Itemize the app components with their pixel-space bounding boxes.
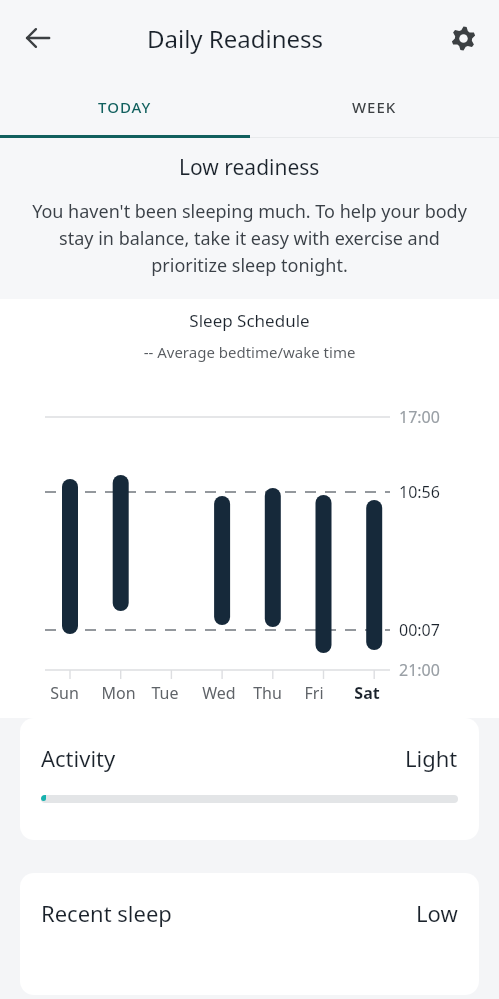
staticText: Daily Readiness: [147, 22, 324, 55]
staticText: 10:56: [399, 481, 440, 503]
staticText: Thu: [253, 682, 282, 704]
staticText: Low: [416, 898, 458, 928]
staticText: Fri: [304, 682, 324, 704]
staticText: Mon: [101, 682, 136, 704]
button[interactable]: Settings: [439, 14, 487, 62]
staticText: Light: [405, 743, 458, 773]
staticText: You haven't been sleeping much. To help …: [23, 199, 476, 277]
staticText: Tue: [151, 682, 179, 704]
button[interactable]: Recent sleep: [20, 873, 479, 995]
staticText: Wed: [202, 682, 236, 704]
button[interactable]: WEEK: [249, 76, 499, 138]
staticText: Sun: [50, 682, 79, 704]
staticText: 21:00: [399, 659, 440, 681]
staticText: TODAY: [98, 97, 152, 117]
staticText: 17:00: [399, 406, 440, 428]
staticText: 00:07: [399, 619, 440, 641]
staticText: Sleep Schedule: [0, 309, 499, 332]
staticText: Low readiness: [179, 153, 320, 182]
staticText: WEEK: [352, 97, 397, 117]
button[interactable]: Activity: [20, 718, 479, 840]
staticText: Recent sleep: [41, 898, 172, 928]
button[interactable]: Back: [14, 14, 62, 62]
staticText: Activity: [41, 743, 116, 773]
staticText: Sat: [354, 682, 380, 704]
staticText: -- Average bedtime/wake time: [0, 342, 499, 362]
button[interactable]: TODAY: [0, 76, 249, 138]
